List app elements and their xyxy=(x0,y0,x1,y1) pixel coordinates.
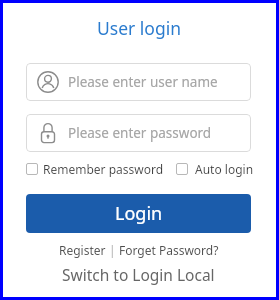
staticText: Remember password xyxy=(43,161,164,177)
button[interactable]: Forget Password? xyxy=(119,242,219,258)
staticText: Auto login xyxy=(195,161,254,177)
button[interactable]: Please enter user name xyxy=(26,63,251,101)
button[interactable]: Login xyxy=(26,194,251,233)
button[interactable]: Please enter password xyxy=(26,114,251,152)
staticText: Login xyxy=(115,201,163,226)
button[interactable]: Remember password xyxy=(26,161,164,177)
button[interactable]: Switch to Login Local xyxy=(62,264,215,285)
staticText: | xyxy=(106,242,119,258)
staticText: Please enter user name xyxy=(68,73,218,91)
staticText: User login xyxy=(97,16,182,40)
button[interactable]: Auto login xyxy=(176,161,254,177)
button[interactable]: Register xyxy=(59,242,106,258)
staticText: Please enter password xyxy=(68,124,212,142)
